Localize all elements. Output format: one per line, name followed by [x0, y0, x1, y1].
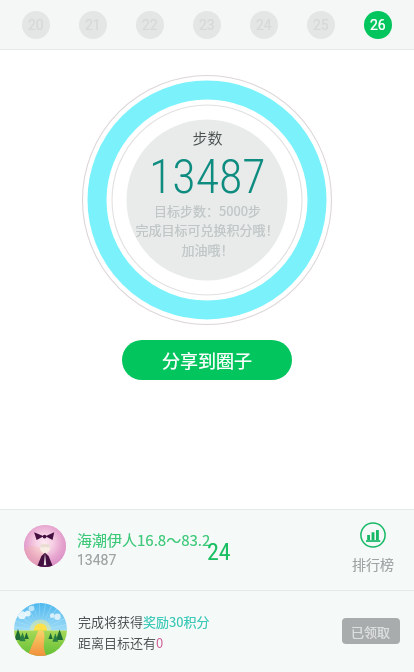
button[interactable]: 22 — [136, 11, 164, 39]
button[interactable]: 分享到圈子 — [122, 340, 292, 380]
button[interactable]: 24 — [250, 11, 278, 39]
staticText: 距离目标还有0 — [78, 633, 164, 652]
button[interactable]: 23 — [193, 11, 221, 39]
button[interactable]: 25 — [307, 11, 335, 39]
button[interactable]: 26 — [364, 11, 392, 39]
staticText: 13487 — [77, 552, 117, 568]
staticText: 13487 — [149, 148, 266, 204]
staticText: 25 — [313, 17, 329, 33]
button[interactable]: 完成将获得奖励30积分 — [0, 591, 414, 672]
staticText: 26 — [370, 17, 386, 33]
staticText: 步数 — [192, 127, 223, 149]
staticText: 21 — [85, 17, 101, 33]
staticText: 加油哦！ — [181, 240, 234, 259]
staticText: 完成目标可兑换积分哦！ — [135, 220, 279, 239]
button[interactable]: 已领取 — [342, 618, 400, 644]
staticText: 完成将获得奖励30积分 — [78, 612, 210, 631]
staticText: 20 — [28, 17, 44, 33]
staticText: 海潮伊人16.8～83.2 — [77, 529, 211, 551]
staticText: 22 — [142, 17, 158, 33]
button[interactable]: 20 — [22, 11, 50, 39]
staticText: 23 — [199, 17, 215, 33]
button[interactable]: 海潮伊人16.8～83.2 — [0, 510, 414, 590]
staticText: 24 — [207, 538, 231, 566]
button[interactable]: 排行榜 — [344, 522, 401, 578]
staticText: 排行榜 — [352, 554, 394, 574]
staticText: 已领取 — [351, 622, 391, 641]
staticText: 24 — [256, 17, 272, 33]
staticText: 分享到圈子 — [162, 347, 252, 373]
staticText: 目标步数：5000步 — [154, 201, 261, 220]
button[interactable]: 21 — [79, 11, 107, 39]
